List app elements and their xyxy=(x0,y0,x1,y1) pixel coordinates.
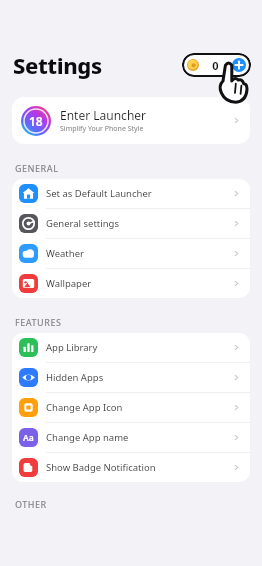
button[interactable]: General settings xyxy=(12,209,250,239)
staticText: GENERAL xyxy=(15,162,59,174)
button[interactable]: Change App Icon xyxy=(12,393,250,423)
button[interactable]: Set as Default Launcher xyxy=(12,179,250,209)
button[interactable]: 18 xyxy=(12,97,250,144)
staticText: General settings xyxy=(46,217,119,230)
staticText: Settings xyxy=(13,50,102,80)
staticText: Enter Launcher xyxy=(60,107,147,123)
button[interactable]: Wallpaper xyxy=(12,269,250,298)
staticText: Wallpaper xyxy=(46,277,92,290)
button[interactable]: Add coins xyxy=(187,53,246,77)
staticText: Hidden Apps xyxy=(46,371,104,384)
button[interactable]: Aa xyxy=(12,423,250,453)
staticText: FEATURES xyxy=(15,316,62,328)
staticText: 0 xyxy=(212,58,219,73)
button[interactable]: Hidden Apps xyxy=(12,363,250,393)
staticText: Change App Icon xyxy=(46,401,123,414)
staticText: Set as Default Launcher xyxy=(46,187,152,200)
staticText: Change App name xyxy=(46,431,129,444)
staticText: OTHER xyxy=(15,498,47,510)
button[interactable]: Weather xyxy=(12,239,250,269)
staticText: Simplify Your Phone Style xyxy=(60,124,144,134)
staticText: Show Badge Notification xyxy=(46,461,156,474)
button[interactable]: App Library xyxy=(12,333,250,363)
staticText: Aa xyxy=(23,432,34,444)
button[interactable]: Show Badge Notification xyxy=(12,453,250,482)
staticText: App Library xyxy=(46,341,98,354)
staticText: Weather xyxy=(46,247,84,260)
staticText: 18 xyxy=(29,113,43,129)
